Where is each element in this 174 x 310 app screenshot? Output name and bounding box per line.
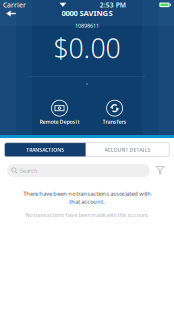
button[interactable]: Remote Deposit bbox=[33, 100, 85, 125]
staticText: Carrier bbox=[3, 0, 26, 9]
staticText: Remote Deposit bbox=[39, 118, 79, 125]
staticText: Search bbox=[20, 167, 37, 174]
staticText: ACCOUNT DETAILS bbox=[104, 146, 150, 153]
button[interactable]: ACCOUNT DETAILS bbox=[86, 143, 169, 157]
staticText: No transactions have been made with this… bbox=[25, 211, 148, 219]
staticText: Transfers bbox=[103, 118, 127, 125]
button[interactable]: Filter bbox=[153, 164, 167, 177]
staticText: 10898611 bbox=[75, 22, 99, 29]
button[interactable]: Transfers bbox=[89, 100, 141, 125]
staticText: $0.00 bbox=[53, 30, 120, 66]
button[interactable]: Back bbox=[0, 3, 22, 23]
staticText: 2:53 PM bbox=[100, 0, 126, 9]
staticText: TRANSACTIONS bbox=[26, 146, 64, 153]
staticText: 0000 SAVINGS bbox=[61, 8, 112, 18]
button[interactable]: TRANSACTIONS bbox=[5, 143, 86, 157]
staticText: There have been no transactions associat… bbox=[23, 190, 151, 205]
